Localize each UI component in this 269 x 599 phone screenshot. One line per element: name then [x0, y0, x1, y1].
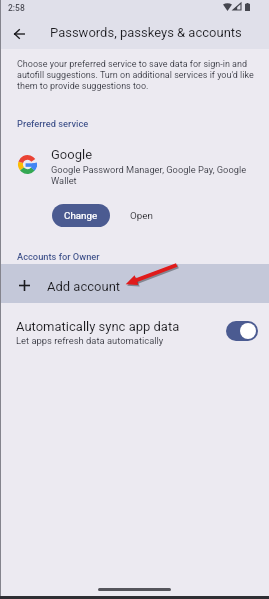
button[interactable]: Google: [0, 140, 269, 192]
button[interactable]: Automatically sync app data: [226, 321, 258, 341]
staticText: Change: [64, 210, 98, 221]
button[interactable]: Automatically sync app data: [0, 310, 269, 352]
button[interactable]: Open: [121, 204, 162, 227]
staticText: Open: [130, 210, 153, 221]
button[interactable]: Back: [3, 17, 36, 50]
staticText: Let apps refresh data automatically: [16, 335, 164, 346]
staticText: Passwords, passkeys & accounts: [50, 25, 242, 40]
staticText: Preferred service: [17, 118, 89, 129]
staticText: Google Password Manager, Google Pay, Goo…: [51, 164, 251, 186]
staticText: Add account: [47, 279, 121, 294]
staticText: Google: [51, 147, 93, 162]
button[interactable]: Add account: [0, 264, 269, 303]
staticText: Choose your preferred service to save da…: [17, 58, 261, 91]
staticText: Accounts for Owner: [17, 251, 100, 262]
button[interactable]: Change: [52, 204, 110, 227]
staticText: 2:58: [8, 3, 25, 13]
staticText: Automatically sync app data: [16, 319, 180, 334]
